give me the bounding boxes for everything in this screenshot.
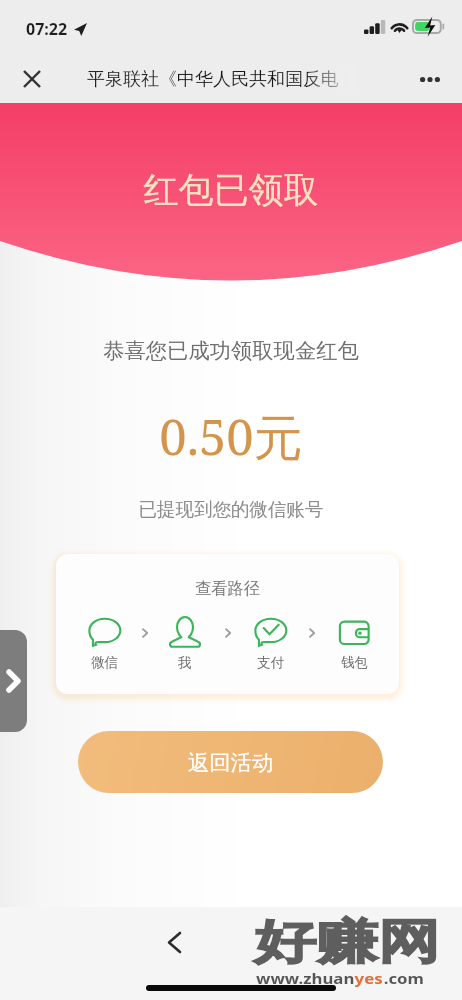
staticText: 红包已领取 (0, 168, 462, 212)
button[interactable]: 钱包 (332, 616, 376, 671)
staticText: 返回活动 (188, 749, 274, 776)
staticText: www.zhuan (256, 968, 355, 988)
button[interactable]: 返回活动 (78, 731, 383, 793)
staticText: 已提现到您的微信账号 (0, 498, 462, 521)
staticText: 微信 (91, 654, 118, 671)
staticText: 钱包 (341, 654, 368, 671)
staticText: 恭喜您已成功领取现金红包 (0, 337, 462, 364)
button[interactable]: Back (154, 922, 194, 962)
staticText: 07:22 (26, 18, 68, 40)
button[interactable]: 微信 (82, 616, 126, 671)
button[interactable]: 支付 (248, 616, 292, 671)
staticText: 0.50元 (0, 403, 462, 470)
staticText: yes (355, 968, 384, 988)
staticText: 平泉联社《中华人民共和国反电信诈骗法》 (87, 68, 355, 91)
staticText: 我 (178, 654, 192, 671)
staticText: 支付 (257, 654, 284, 671)
button[interactable]: More options (414, 63, 446, 95)
button[interactable]: Expand panel (0, 630, 27, 732)
button[interactable]: 我 (163, 616, 207, 671)
staticText: 查看路径 (56, 578, 399, 599)
staticText: 好赚网 (254, 913, 440, 972)
button[interactable]: Close (16, 63, 48, 95)
staticText: .com (384, 968, 424, 988)
